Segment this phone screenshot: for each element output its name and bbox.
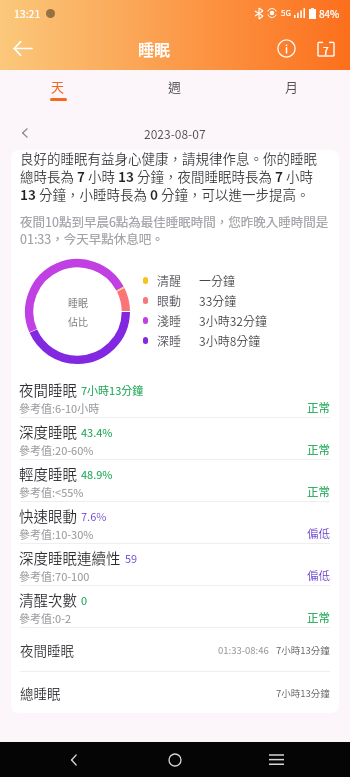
staticText: 2023-08-07	[144, 125, 206, 142]
staticText: 參考值:6-10小時	[19, 400, 100, 416]
staticText: 正常	[307, 609, 330, 626]
button[interactable]: 夜間睡眠	[11, 628, 339, 671]
button[interactable]: 深度睡眠	[11, 418, 339, 459]
button[interactable]: Home	[159, 744, 191, 776]
staticText: 參考值:<55%	[19, 484, 84, 500]
staticText: 43.4%	[81, 424, 113, 440]
staticText: 正常	[307, 441, 330, 458]
staticText: 總睡眠	[20, 683, 61, 703]
staticText: 偏低	[307, 525, 330, 542]
staticText: 7小時13分鐘	[276, 686, 330, 700]
staticText: 夜間10點到早晨6點為最佳睡眠時間，您昨晚入睡時間是01:33，今天早點休息吧。	[20, 212, 330, 248]
button[interactable]: Back	[0, 26, 44, 70]
button[interactable]: 週	[116, 70, 233, 110]
staticText: 快速眼動	[19, 505, 77, 526]
staticText: 天	[51, 77, 65, 96]
staticText: 偏低	[307, 567, 330, 584]
staticText: 參考值:70-100	[19, 568, 90, 584]
staticText: 48.9%	[81, 466, 113, 482]
button[interactable]: 夜間睡眠	[11, 376, 339, 417]
staticText: 參考值:10-30%	[19, 526, 94, 542]
button[interactable]: 總睡眠	[11, 672, 339, 713]
staticText: 一分鐘	[199, 272, 236, 289]
staticText: 84%	[319, 6, 340, 20]
button[interactable]: Calendar	[306, 28, 346, 68]
staticText: 7.6%	[81, 508, 107, 524]
staticText: 5G	[281, 7, 291, 19]
staticText: 參考值:0-2	[19, 610, 72, 626]
staticText: 59	[125, 550, 138, 566]
staticText: 7小時13分鐘	[276, 643, 330, 657]
staticText: 01:33-08:46	[218, 643, 269, 657]
staticText: 13:21	[14, 6, 41, 21]
staticText: 33分鐘	[199, 292, 237, 309]
staticText: 0	[81, 592, 88, 608]
staticText: 深度睡眠連續性	[19, 547, 121, 568]
staticText: 7	[323, 43, 329, 57]
staticText: 眼動	[157, 292, 182, 309]
button[interactable]: 輕度睡眠	[11, 460, 339, 501]
staticText: 3小時8分鐘	[199, 332, 261, 349]
button[interactable]: Info	[266, 28, 306, 68]
staticText: 睡眠	[138, 37, 171, 60]
staticText: 正常	[307, 483, 330, 500]
button[interactable]: 天	[0, 70, 116, 110]
staticText: 睡眠	[68, 295, 88, 309]
staticText: 清醒次數	[19, 589, 77, 610]
staticText: 良好的睡眠有益身心健康，請規律作息。你的睡眠總時長為 7 小時 13 分鐘，夜間…	[20, 150, 330, 204]
button[interactable]: 清醒次數	[11, 586, 339, 627]
staticText: 月	[285, 77, 299, 96]
staticText: 週	[168, 77, 182, 96]
staticText: 深度睡眠	[19, 421, 77, 442]
staticText: 深睡	[157, 332, 182, 349]
staticText: 夜間睡眠	[19, 379, 77, 400]
staticText: 3小時32分鐘	[199, 312, 267, 329]
button[interactable]: 快速眼動	[11, 502, 339, 543]
button[interactable]: Back	[58, 744, 90, 776]
staticText: 7小時13分鐘	[81, 382, 144, 398]
staticText: 淺睡	[157, 312, 182, 329]
staticText: 夜間睡眠	[20, 640, 74, 660]
staticText: 正常	[307, 399, 330, 416]
button[interactable]: Recents	[260, 744, 292, 776]
staticText: 參考值:20-60%	[19, 442, 94, 458]
staticText: 輕度睡眠	[19, 463, 77, 484]
button[interactable]: 月	[233, 70, 350, 110]
button[interactable]: Previous day	[16, 124, 34, 142]
staticText: 佔比	[68, 314, 88, 328]
staticText: 清醒	[157, 272, 182, 289]
button[interactable]: 深度睡眠連續性	[11, 544, 339, 585]
